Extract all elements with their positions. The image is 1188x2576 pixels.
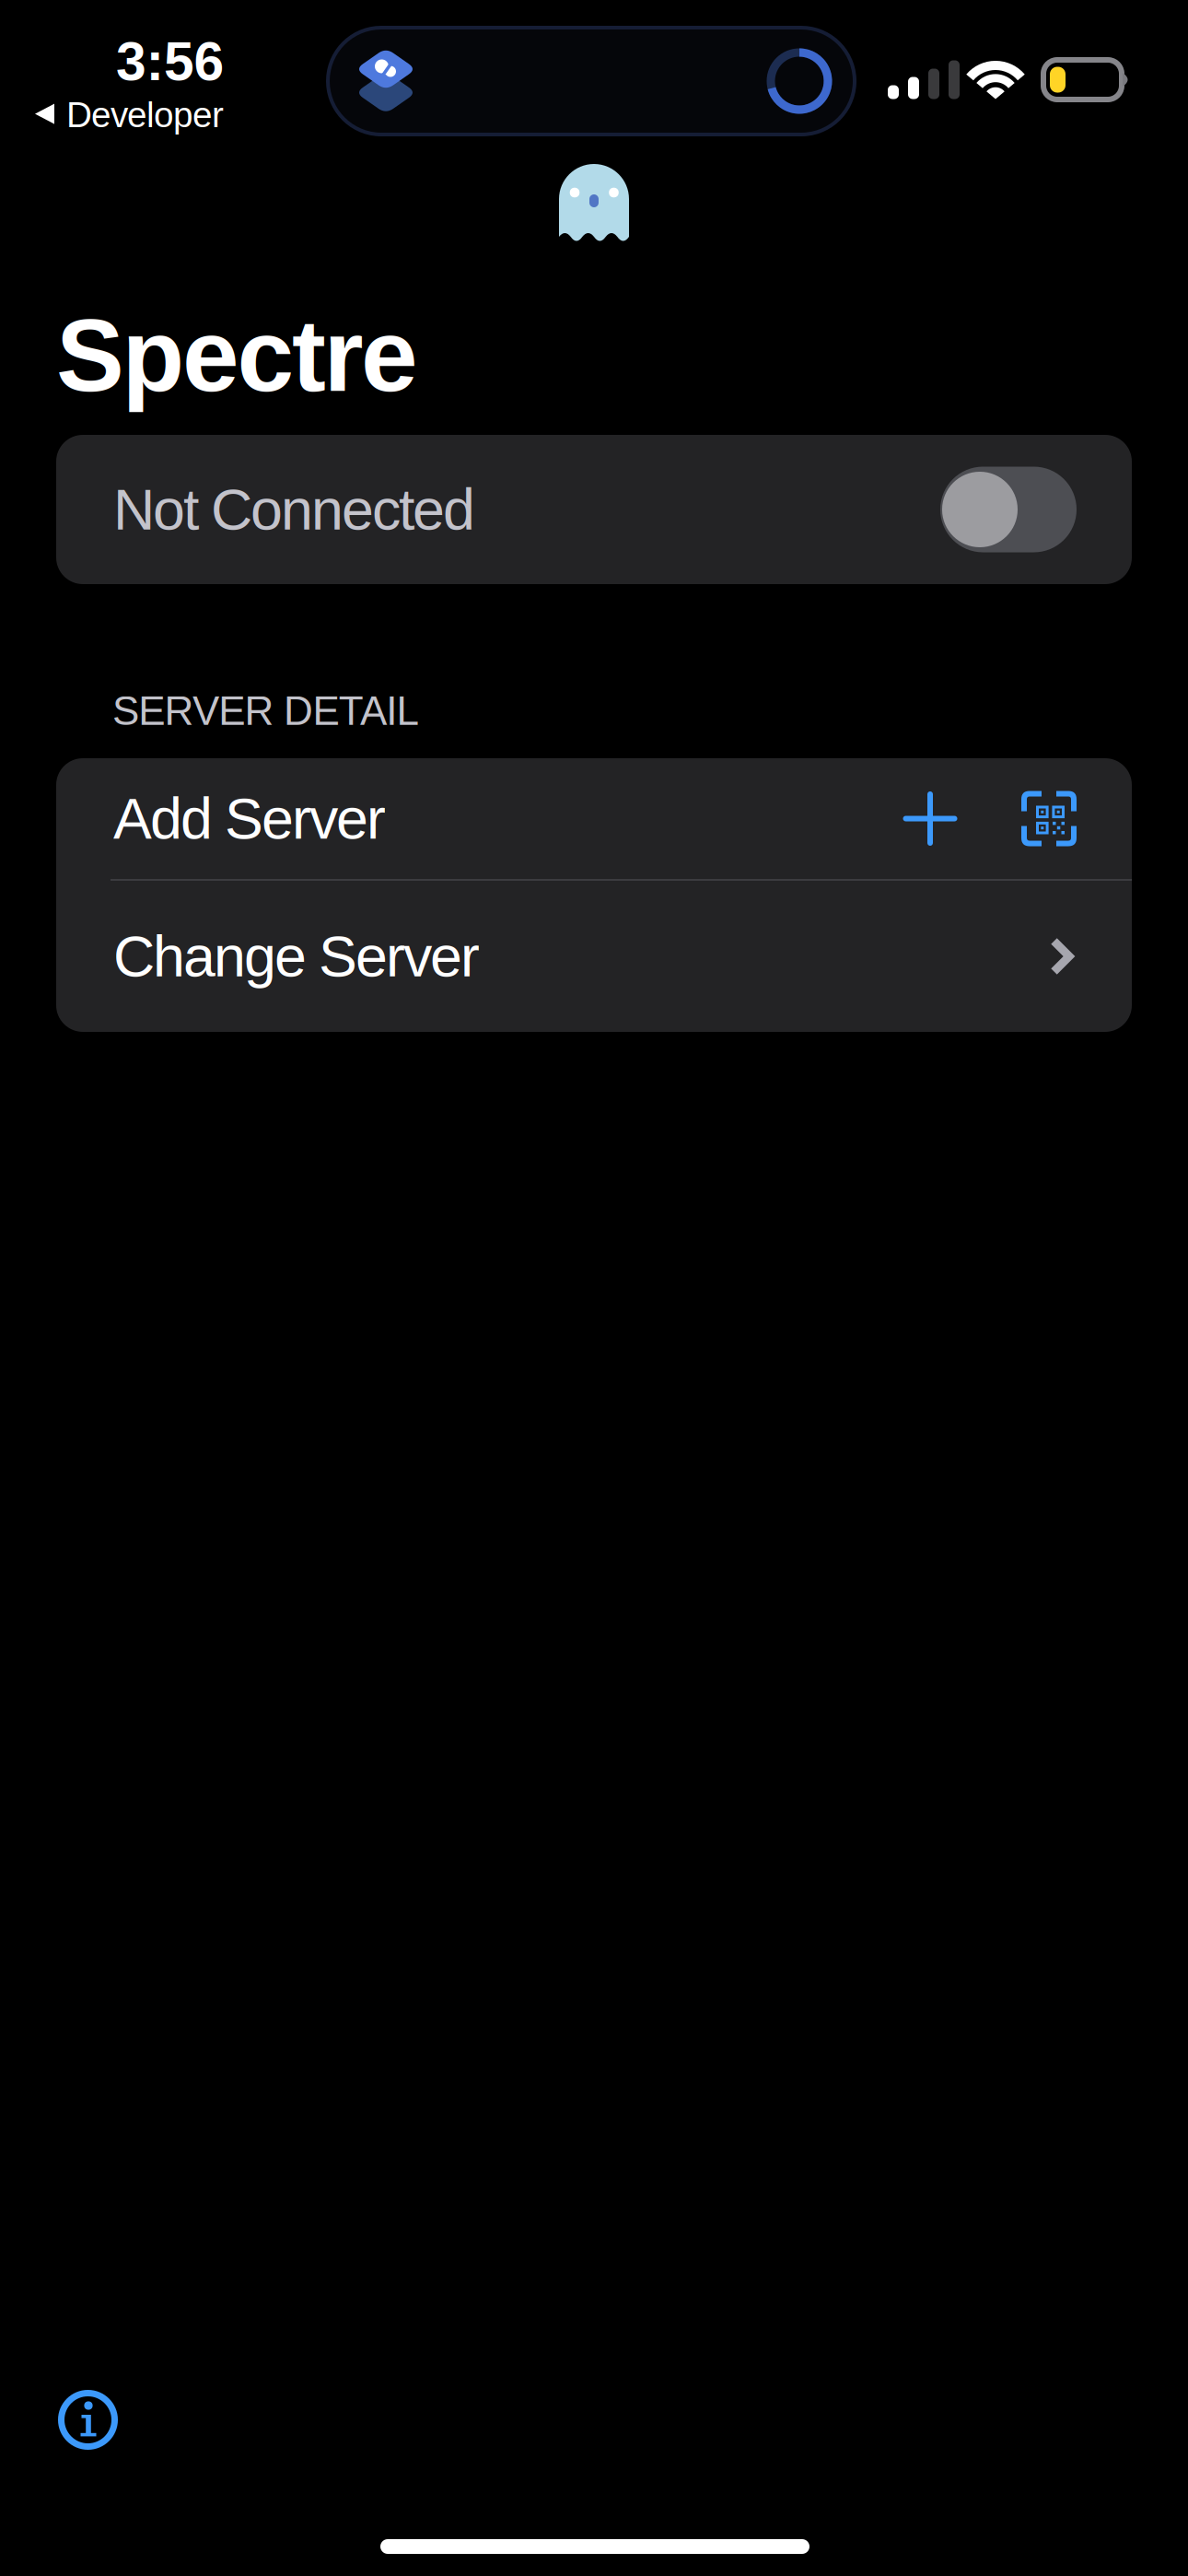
staticText: 3:56 xyxy=(116,31,224,92)
staticText: Add Server xyxy=(113,786,386,851)
staticText: Developer xyxy=(66,95,224,135)
button[interactable]: Not Connected xyxy=(56,435,1132,584)
staticText: Spectre xyxy=(56,299,418,412)
staticText: SERVER DETAIL xyxy=(112,688,419,734)
button[interactable]: Change Server xyxy=(56,881,1132,1032)
button[interactable]: Developer xyxy=(35,95,224,135)
button[interactable]: Add Server xyxy=(56,758,1132,879)
button[interactable]: About Spectre xyxy=(58,2389,118,2451)
staticText: Not Connected xyxy=(113,477,475,542)
staticText: Change Server xyxy=(113,924,480,989)
